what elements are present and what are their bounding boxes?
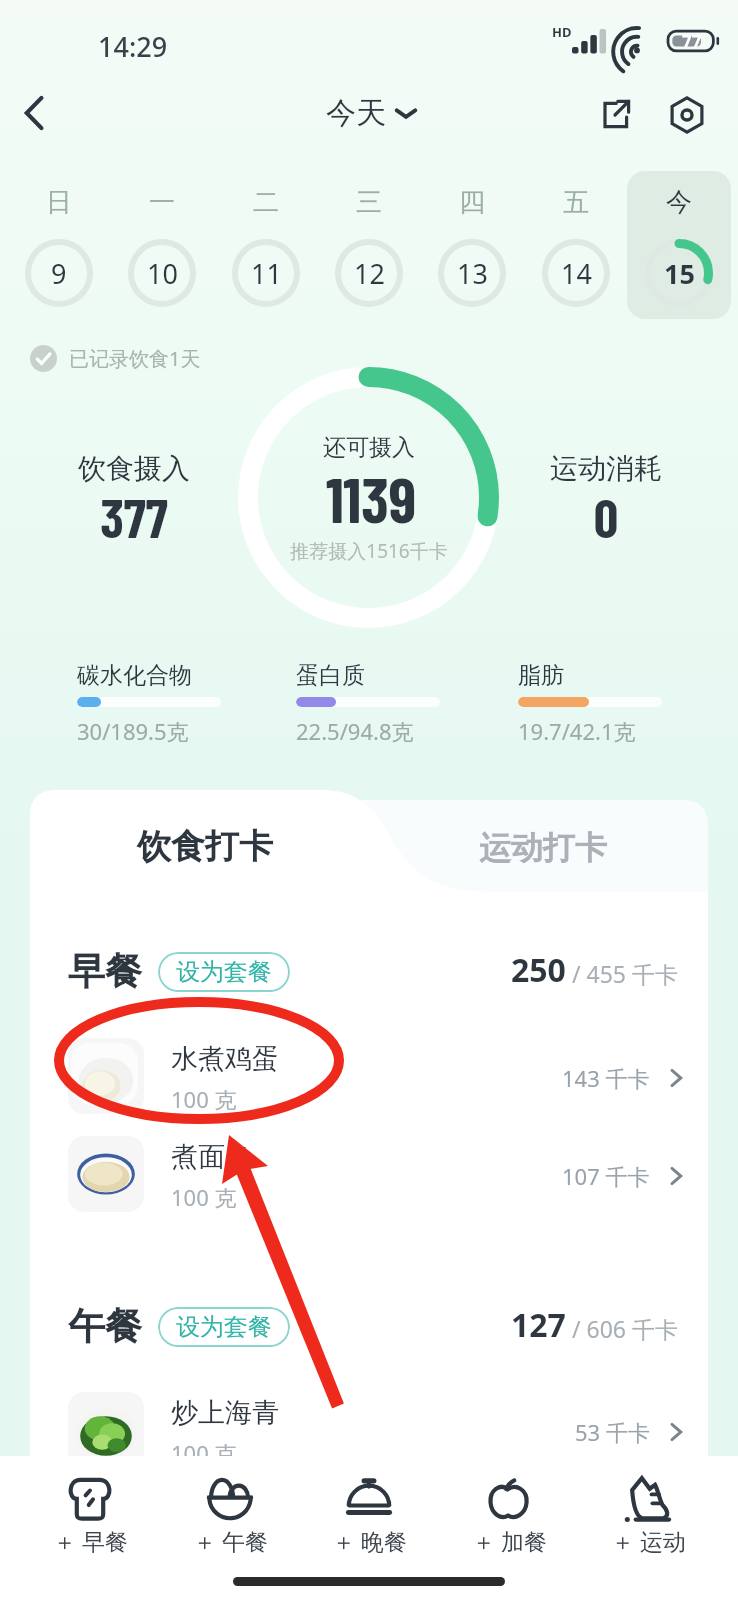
staticText: 一 — [149, 186, 175, 219]
staticText: 设为套餐 — [176, 957, 272, 987]
staticText: 今天 — [326, 94, 386, 132]
button[interactable]: 四 — [420, 171, 524, 319]
staticText: ＋ 早餐 — [53, 1525, 128, 1556]
staticText: 还可摄入 — [159, 433, 579, 462]
button[interactable]: 二 — [214, 171, 318, 319]
staticText: 炒上海青 — [171, 1396, 279, 1430]
button[interactable] — [30, 1027, 708, 1125]
staticText: 377 — [0, 484, 344, 549]
staticText: 22.5/94.8克 — [296, 716, 414, 746]
staticText: 饮食摄入 — [0, 451, 344, 486]
button[interactable]: 设为套餐 — [158, 1307, 290, 1347]
button[interactable]: 五 — [524, 171, 628, 319]
staticText: 1139 — [161, 460, 581, 536]
button[interactable] — [390, 800, 708, 892]
staticText: 14 — [561, 255, 592, 292]
button[interactable]: ＋ 午餐 — [161, 1462, 299, 1558]
staticText: 饮食打卡 — [0, 825, 415, 868]
staticText: 运动打卡 — [333, 828, 738, 868]
staticText: 14:29 — [98, 28, 168, 65]
staticText: HD — [552, 23, 572, 41]
staticText: / 606 千卡 — [566, 1313, 678, 1344]
staticText: 早餐 — [68, 948, 142, 995]
staticText: 100 克 — [171, 1084, 237, 1114]
staticText: 143 千卡 — [562, 1063, 650, 1093]
staticText: 二 — [253, 186, 279, 219]
staticText: 0 — [396, 484, 738, 549]
button[interactable]: 一 — [110, 171, 214, 319]
staticText: 煮面条 — [171, 1140, 252, 1174]
staticText: 已记录饮食1天 — [69, 345, 201, 372]
staticText: 15 — [664, 255, 695, 292]
button[interactable] — [30, 1381, 708, 1479]
button[interactable]: ＋ 晚餐 — [300, 1462, 438, 1558]
staticText: 五 — [563, 186, 589, 219]
button[interactable]: Share — [583, 83, 647, 147]
staticText: 碳水化合物 — [77, 661, 192, 690]
staticText: 三 — [356, 186, 382, 219]
staticText: 9 — [51, 255, 67, 292]
button[interactable]: Settings — [655, 83, 719, 147]
button[interactable]: ＋ 加餐 — [440, 1462, 578, 1558]
button[interactable]: 日 — [7, 171, 111, 319]
button[interactable]: 三 — [317, 171, 421, 319]
staticText: 77 — [682, 30, 702, 53]
staticText: ＋ 加餐 — [472, 1525, 547, 1556]
button[interactable]: 今 — [627, 171, 731, 319]
staticText: ＋ 晚餐 — [332, 1525, 407, 1556]
staticText: 午餐 — [68, 1303, 142, 1350]
button[interactable]: 设为套餐 — [158, 952, 290, 992]
staticText: 四 — [459, 186, 485, 219]
staticText: 13 — [457, 255, 488, 292]
staticText: 脂肪 — [518, 661, 564, 690]
staticText: 蛋白质 — [296, 661, 365, 690]
staticText: 100 克 — [171, 1182, 237, 1212]
staticText: 11 — [251, 255, 282, 292]
staticText: 12 — [354, 255, 385, 292]
button[interactable]: ＋ 运动 — [579, 1462, 717, 1558]
staticText: 运动消耗 — [396, 451, 738, 486]
staticText: / 455 千卡 — [566, 958, 678, 989]
staticText: 推荐摄入1516千卡 — [159, 538, 579, 564]
staticText: 日 — [46, 186, 72, 219]
staticText: ＋ 午餐 — [193, 1525, 268, 1556]
button[interactable]: Back — [4, 82, 66, 144]
staticText: 今 — [666, 186, 692, 219]
button[interactable] — [30, 790, 360, 890]
staticText: 100 克 — [171, 1438, 237, 1468]
staticText: 53 千卡 — [575, 1417, 650, 1447]
staticText: 107 千卡 — [562, 1161, 650, 1191]
staticText: 10 — [147, 255, 178, 292]
button[interactable] — [30, 1125, 708, 1223]
staticText: 30/189.5克 — [77, 716, 189, 746]
staticText: 127 — [511, 1303, 566, 1347]
staticText: 250 — [511, 948, 566, 992]
staticText: ＋ 运动 — [611, 1525, 686, 1556]
button[interactable]: 今天 — [326, 94, 417, 132]
staticText: 19.7/42.1克 — [518, 716, 636, 746]
button[interactable]: ＋ 早餐 — [21, 1462, 159, 1558]
staticText: 设为套餐 — [176, 1312, 272, 1342]
staticText: 水煮鸡蛋 — [171, 1042, 279, 1076]
